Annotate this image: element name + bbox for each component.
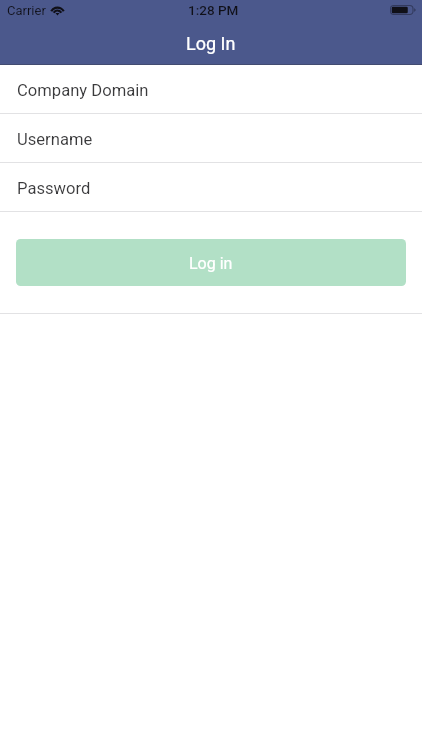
other: Battery — [390, 5, 416, 15]
button[interactable]: Company Domain — [0, 65, 422, 113]
staticText: 1:28 PM — [188, 2, 239, 18]
button[interactable]: Log in — [16, 239, 406, 286]
staticText: Carrier — [7, 3, 46, 18]
button[interactable]: Password — [0, 163, 422, 211]
staticText: Log In — [186, 33, 236, 54]
button[interactable]: Username — [0, 114, 422, 162]
staticText: Password — [17, 179, 91, 198]
staticText: Username — [17, 130, 93, 149]
staticText: Log in — [189, 254, 233, 273]
staticText: Company Domain — [17, 81, 149, 100]
other: Wi-Fi signal — [50, 3, 65, 15]
